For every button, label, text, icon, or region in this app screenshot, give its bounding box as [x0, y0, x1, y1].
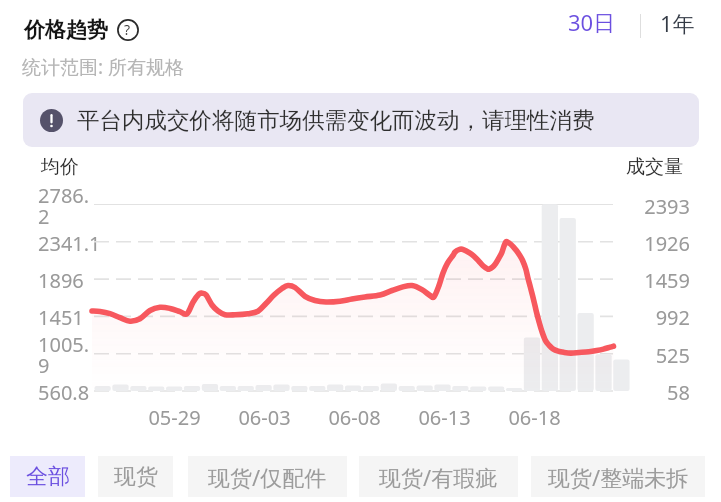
staticText: 现货/整端未拆 [548, 462, 689, 492]
button[interactable]: 现货/整端未拆 [531, 456, 705, 497]
button[interactable]: 30日 [558, 6, 626, 38]
button[interactable]: 价格趋势 [14, 16, 108, 44]
button[interactable]: 现货/仅配件 [188, 456, 347, 497]
button[interactable]: 全部 [10, 456, 85, 497]
staticText: 525 [655, 342, 690, 366]
button[interactable]: 1年 [650, 7, 704, 39]
staticText: 58 [667, 379, 690, 403]
staticText: 560.8 [38, 379, 90, 403]
button[interactable]: 现货/有瑕疵 [359, 456, 518, 497]
staticText: 现货/仅配件 [208, 462, 327, 492]
staticText: 成交量 [626, 155, 683, 179]
staticText: ? [124, 20, 131, 39]
staticText: 1926 [644, 230, 690, 254]
staticText: 现货 [114, 463, 158, 491]
staticText: 2341.1 [38, 230, 101, 254]
staticText: 均价 [41, 155, 79, 179]
staticText: 06-18 [508, 404, 561, 431]
staticText: 06-03 [238, 404, 291, 431]
staticText: 统计范围: 所有规格 [22, 54, 185, 80]
staticText: 价格趋势 [24, 17, 108, 43]
staticText: 现货/有瑕疵 [379, 462, 498, 492]
staticText: 06-08 [328, 404, 381, 431]
staticText: 1459 [644, 267, 690, 291]
staticText: 2786. 2 [38, 182, 90, 228]
staticText: 1年 [660, 8, 695, 38]
staticText: 全部 [26, 463, 70, 491]
staticText: 平台内成交价将随市场供需变化而波动，请理性消费 [77, 106, 595, 134]
staticText: 992 [655, 304, 690, 328]
staticText: 2393 [644, 193, 690, 217]
button[interactable]: 价格趋势说明 [116, 18, 139, 41]
staticText: 06-13 [418, 404, 471, 431]
staticText: 1896 [38, 267, 84, 291]
button[interactable]: 平台内成交价将随市场供需变化而波动，请理性消费 [23, 93, 699, 147]
staticText: 1005. 9 [38, 331, 90, 377]
button[interactable]: 现货 [98, 456, 173, 497]
staticText: 05-29 [148, 404, 201, 431]
staticText: 30日 [568, 7, 616, 37]
staticText: 1451 [38, 304, 84, 328]
